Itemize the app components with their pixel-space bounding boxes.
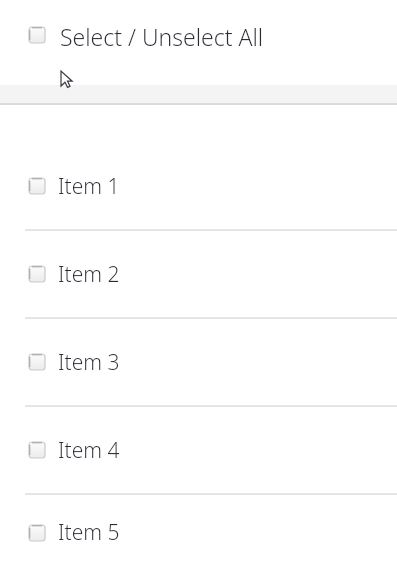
staticText: Select / Unselect All [60,21,264,52]
other: Select Item 5 [28,524,46,542]
button[interactable]: Select Item 5 [0,495,397,570]
other: Select Item 4 [28,441,46,459]
staticText: Item 1 [58,172,120,201]
other: Select Item 3 [28,353,46,371]
button[interactable]: Select or unselect all [0,0,397,72]
staticText: Item 5 [58,518,120,547]
staticText: Item 3 [58,348,120,377]
button[interactable]: Select Item 3 [0,319,397,405]
button[interactable]: Select Item 4 [0,407,397,493]
staticText: Item 4 [58,436,120,465]
button[interactable]: Select Item 1 [0,143,397,229]
other: Select or unselect all [28,26,46,44]
other: Select Item 1 [28,177,46,195]
button[interactable]: Select Item 2 [0,231,397,317]
staticText: Item 2 [58,260,120,289]
other: Select Item 2 [28,265,46,283]
